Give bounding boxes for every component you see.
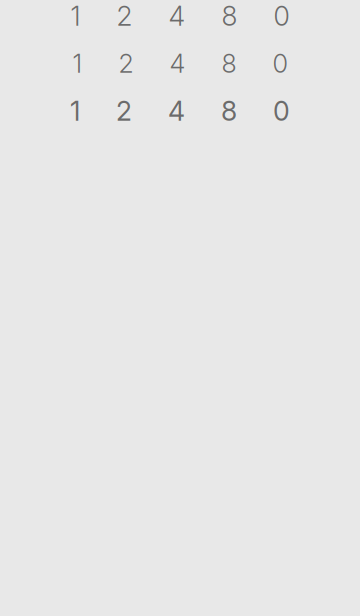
staticText: 0 (273, 0, 289, 32)
staticText: 0 (272, 48, 287, 79)
staticText: 4 (168, 95, 185, 127)
staticText: 2 (116, 95, 132, 127)
staticText: 1 (72, 48, 82, 79)
staticText: 1 (70, 95, 80, 127)
staticText: 2 (116, 0, 132, 32)
staticText: 1 (70, 0, 80, 32)
staticText: 8 (221, 0, 237, 32)
staticText: 2 (118, 48, 133, 79)
staticText: 8 (221, 48, 236, 79)
staticText: 4 (169, 48, 185, 79)
staticText: 4 (168, 0, 185, 32)
staticText: 8 (221, 95, 237, 127)
staticText: 0 (273, 95, 290, 127)
